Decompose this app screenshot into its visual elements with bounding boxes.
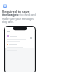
other: App icon <box>3 4 7 8</box>
staticText: Use the device to check and make sure yo… <box>2 13 37 23</box>
staticText: Required to save messages <box>2 9 38 17</box>
